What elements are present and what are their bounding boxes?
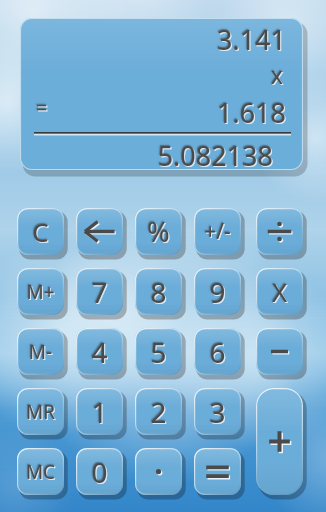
staticText: 4 bbox=[77, 334, 123, 372]
staticText: MR bbox=[18, 400, 64, 426]
staticText: 3.141 bbox=[21, 22, 287, 59]
staticText: 1.618 bbox=[21, 95, 287, 132]
staticText: +/- bbox=[194, 217, 241, 246]
button[interactable]: 5 bbox=[135, 328, 185, 378]
staticText: 3 bbox=[194, 393, 241, 431]
staticText: 0 bbox=[77, 454, 123, 492]
staticText: 5 bbox=[136, 334, 182, 372]
staticText: 8 bbox=[135, 273, 182, 311]
button[interactable]: X bbox=[256, 268, 306, 318]
staticText: 1.618 bbox=[20, 94, 286, 131]
button[interactable]: 1 bbox=[76, 388, 126, 438]
staticText: M+ bbox=[17, 279, 64, 305]
staticText: = bbox=[36, 94, 66, 121]
staticText: MC bbox=[17, 459, 64, 485]
staticText: 2 bbox=[135, 393, 182, 431]
button[interactable]: +/- bbox=[194, 208, 244, 258]
button[interactable]: 2 bbox=[135, 388, 185, 438]
staticText: 2 bbox=[136, 394, 182, 432]
staticText: 6 bbox=[194, 333, 241, 371]
staticText: 1 bbox=[76, 393, 123, 431]
staticText: = bbox=[37, 95, 67, 122]
staticText: % bbox=[135, 213, 182, 250]
button[interactable]: M+ bbox=[17, 268, 67, 318]
staticText: 5.082138 bbox=[21, 138, 274, 170]
staticText: 1 bbox=[77, 394, 123, 432]
staticText: 4 bbox=[76, 333, 123, 371]
staticText: C bbox=[18, 215, 64, 250]
staticText: % bbox=[136, 214, 182, 251]
staticText: 8 bbox=[136, 274, 182, 312]
staticText: 9 bbox=[195, 274, 241, 312]
button[interactable]: Decimal point bbox=[135, 448, 185, 498]
button[interactable]: % bbox=[135, 208, 185, 258]
button[interactable]: Equals bbox=[194, 448, 244, 498]
staticText: 6 bbox=[195, 334, 241, 372]
staticText: 3.141 bbox=[20, 21, 286, 58]
button[interactable]: MC bbox=[17, 448, 67, 498]
staticText: MC bbox=[18, 460, 64, 486]
button[interactable]: MR bbox=[17, 388, 67, 438]
button[interactable]: Minus bbox=[256, 328, 306, 378]
button[interactable]: 0 bbox=[76, 448, 126, 498]
button[interactable]: C bbox=[17, 208, 67, 258]
staticText: X bbox=[256, 274, 303, 309]
staticText: +/- bbox=[195, 218, 241, 247]
button[interactable]: Divide bbox=[256, 208, 306, 258]
staticText: 5 bbox=[135, 333, 182, 371]
staticText: 5.082138 bbox=[20, 137, 273, 170]
staticText: 7 bbox=[77, 274, 123, 312]
staticText: M+ bbox=[18, 280, 64, 306]
staticText: 0 bbox=[76, 453, 123, 491]
button[interactable]: Plus bbox=[256, 388, 306, 498]
staticText: x bbox=[20, 59, 283, 90]
button[interactable]: 7 bbox=[76, 268, 126, 318]
staticText: 3 bbox=[195, 394, 241, 432]
staticText: 7 bbox=[76, 273, 123, 311]
staticText: M- bbox=[17, 339, 64, 365]
button[interactable]: M- bbox=[17, 328, 67, 378]
button[interactable]: 9 bbox=[194, 268, 244, 318]
button[interactable]: 4 bbox=[76, 328, 126, 378]
staticText: x bbox=[21, 60, 284, 91]
button[interactable]: 6 bbox=[194, 328, 244, 378]
staticText: M- bbox=[18, 340, 64, 366]
button[interactable]: 8 bbox=[135, 268, 185, 318]
button[interactable]: 3 bbox=[194, 388, 244, 438]
button[interactable]: Backspace bbox=[76, 208, 126, 258]
staticText: C bbox=[17, 214, 64, 249]
staticText: X bbox=[257, 275, 303, 310]
staticText: 9 bbox=[194, 273, 241, 311]
staticText: MR bbox=[17, 399, 64, 425]
